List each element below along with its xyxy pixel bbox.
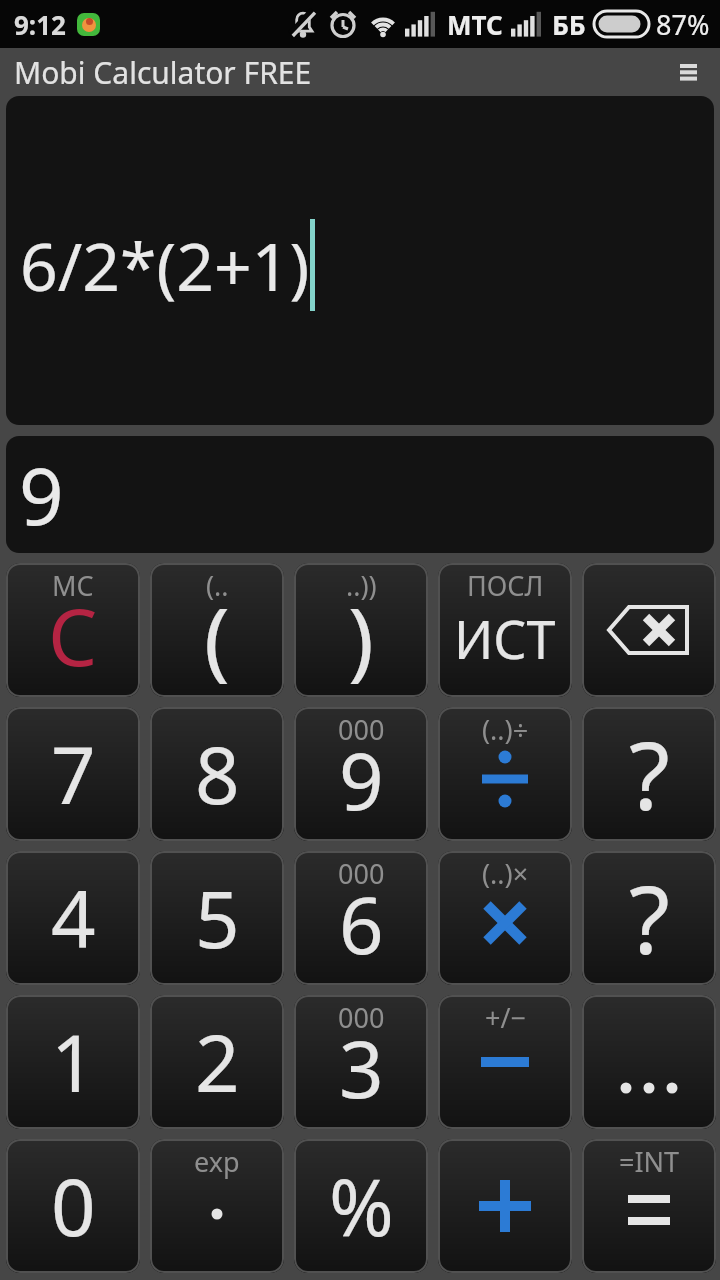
button[interactable]: 1 (6, 995, 140, 1129)
staticText: 5 (195, 865, 240, 971)
button[interactable]: 9 (6, 436, 714, 553)
staticText: (..)× (482, 855, 529, 892)
staticText: 8 (195, 721, 240, 827)
staticText: 2 (195, 1009, 240, 1115)
staticText: 4 (51, 865, 96, 971)
button[interactable]: ? (582, 707, 716, 841)
staticText: ( (204, 578, 230, 695)
staticText: 9:12 (14, 7, 66, 42)
staticText: (..)÷ (482, 711, 529, 748)
button[interactable] (582, 563, 716, 697)
staticText: MC (52, 567, 94, 604)
button[interactable]: 6/2*(2+1) (6, 96, 714, 425)
staticText: 9 (339, 727, 384, 833)
button[interactable]: ПОСЛ (438, 563, 572, 697)
button[interactable]: (..)÷ (438, 707, 572, 841)
button[interactable]: MC (6, 563, 140, 697)
staticText: 9 (19, 442, 64, 548)
button[interactable]: % (294, 1139, 428, 1273)
button[interactable] (582, 995, 716, 1129)
button[interactable]: 2 (150, 995, 284, 1129)
staticText: ? (629, 854, 670, 982)
staticText: (.. (206, 567, 229, 604)
button[interactable]: 000 (294, 995, 428, 1129)
staticText: exp (194, 1143, 240, 1180)
staticText: 6 (339, 871, 384, 977)
staticText: 6/2*(2+1) (20, 220, 310, 310)
button[interactable]: (..)× (438, 851, 572, 985)
button[interactable]: 4 (6, 851, 140, 985)
staticText: ПОСЛ (467, 567, 544, 604)
staticText: ) (348, 578, 374, 695)
button[interactable] (674, 58, 702, 86)
button[interactable]: 5 (150, 851, 284, 985)
staticText: 87% (656, 6, 710, 43)
staticText: 000 (338, 855, 385, 892)
button[interactable]: exp (150, 1139, 284, 1273)
staticText: C (48, 583, 98, 689)
staticText: 000 (338, 999, 385, 1036)
staticText: ББ (552, 7, 586, 42)
button[interactable]: =INT (582, 1139, 716, 1273)
staticText: МТС (447, 7, 503, 42)
staticText: ? (629, 710, 670, 838)
button[interactable]: 000 (294, 707, 428, 841)
button[interactable] (438, 1139, 572, 1273)
button[interactable]: ..)) (294, 563, 428, 697)
staticText: 0 (51, 1153, 96, 1259)
staticText: 1 (51, 1009, 96, 1115)
button[interactable]: 7 (6, 707, 140, 841)
staticText: ИСТ (454, 603, 556, 674)
button[interactable]: 000 (294, 851, 428, 985)
staticText: +/− (485, 999, 526, 1036)
button[interactable]: +/− (438, 995, 572, 1129)
staticText: 3 (339, 1015, 384, 1121)
button[interactable]: ? (582, 851, 716, 985)
staticText: % (329, 1153, 394, 1259)
staticText: ..)) (346, 567, 377, 604)
staticText: 000 (338, 711, 385, 748)
button[interactable]: (.. (150, 563, 284, 697)
button[interactable]: 8 (150, 707, 284, 841)
staticText: =INT (619, 1143, 680, 1180)
staticText: Mobi Calculator FREE (14, 52, 312, 93)
button[interactable]: 0 (6, 1139, 140, 1273)
staticText: 7 (51, 721, 96, 827)
